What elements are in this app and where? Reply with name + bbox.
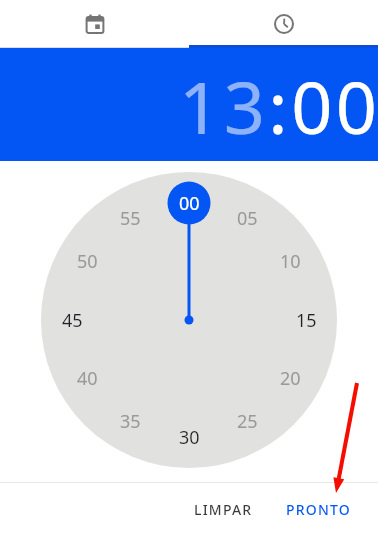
button[interactable] bbox=[0, 0, 189, 48]
staticText: 45 bbox=[62, 308, 83, 333]
staticText: 13:00 bbox=[179, 57, 378, 155]
staticText: 30 bbox=[179, 425, 200, 450]
staticText: 55 bbox=[120, 206, 141, 231]
button[interactable]: PRONTO bbox=[278, 491, 359, 528]
staticText: 15 bbox=[296, 308, 317, 333]
button[interactable]: LIMPAR bbox=[186, 491, 261, 528]
staticText: PRONTO bbox=[286, 500, 351, 519]
staticText: LIMPAR bbox=[194, 500, 253, 519]
button[interactable] bbox=[189, 0, 378, 48]
staticText: 10 bbox=[280, 249, 301, 274]
staticText: 05 bbox=[237, 206, 258, 231]
staticText: 25 bbox=[237, 409, 258, 434]
staticText: 40 bbox=[77, 366, 98, 391]
staticText: 35 bbox=[120, 409, 141, 434]
staticText: 50 bbox=[77, 249, 98, 274]
staticText: 20 bbox=[280, 366, 301, 391]
staticText: 00 bbox=[179, 191, 200, 216]
